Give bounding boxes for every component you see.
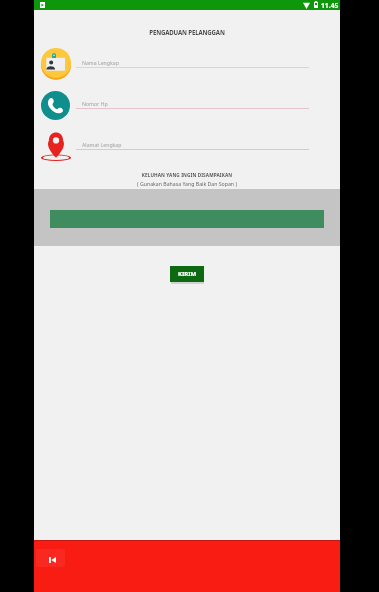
button[interactable]: Nomor Hp: [76, 94, 308, 110]
button[interactable]: Nama Lengkap: [76, 53, 308, 69]
staticText: Alamat Lengkap: [82, 141, 122, 148]
staticText: Nomor Hp: [82, 100, 108, 107]
button[interactable]: Back: [36, 549, 65, 567]
staticText: PENGADUAN PELANGGAN: [34, 28, 340, 36]
button[interactable]: KIRIM: [170, 266, 204, 282]
staticText: 11.45: [321, 1, 339, 10]
staticText: KIRIM: [178, 270, 197, 278]
staticText: ( Gunakan Bahasa Yang Baik Dan Sopan ): [34, 180, 340, 187]
button[interactable]: Alamat Lengkap: [76, 135, 308, 151]
staticText: Nama Lengkap: [82, 59, 119, 66]
staticText: KELUHAN YANG INGIN DISAMPAIKAN: [34, 172, 340, 178]
